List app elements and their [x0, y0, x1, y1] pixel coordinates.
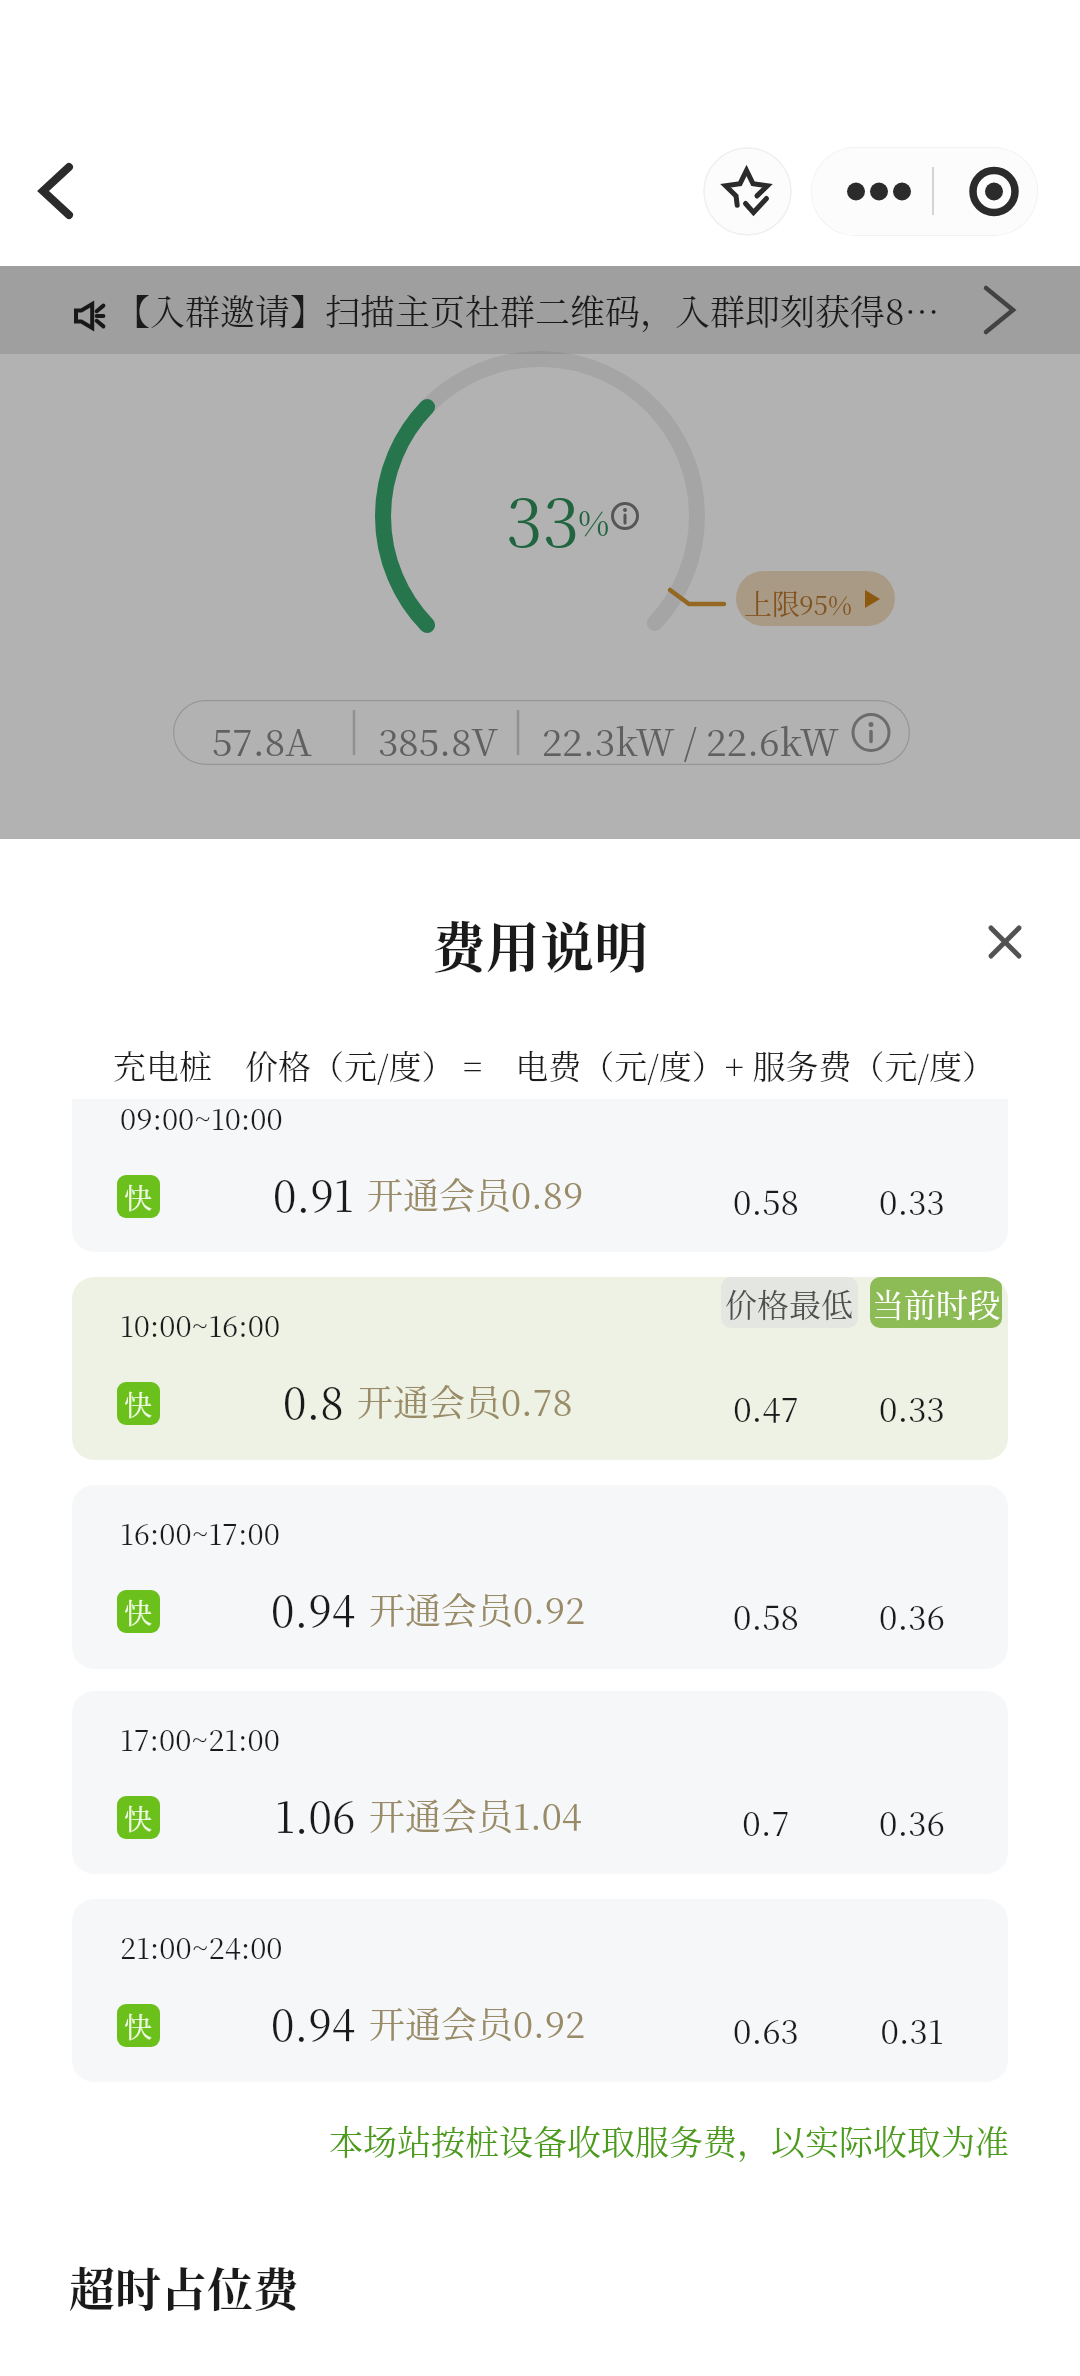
staticText: 费用说明: [0, 906, 1080, 984]
staticText: 开通会员0.89: [367, 1168, 584, 1220]
staticText: 开通会员0.92: [369, 1997, 586, 2049]
staticText: 上限: [744, 583, 801, 623]
staticText: 0.94: [271, 1579, 356, 1639]
button[interactable]: 上限: [736, 571, 895, 626]
staticText: 17:00~21:00: [120, 1718, 280, 1760]
button[interactable]: 16:00~17:00: [72, 1485, 1008, 1669]
button[interactable]: 09:00~10:00: [72, 1099, 1008, 1252]
staticText: 57.8A: [212, 713, 312, 765]
staticText: 开通会员1.04: [369, 1789, 582, 1841]
button[interactable]: Back: [16, 151, 96, 231]
staticText: 0.94: [271, 1993, 356, 2053]
staticText: 本场站按桩设备收取服务费，以实际收取为准: [0, 2116, 1009, 2165]
staticText: 09:00~10:00: [120, 1099, 283, 1139]
staticText: 22.3kW / 22.6kW: [542, 713, 839, 765]
button[interactable]: 【入群邀请】扫描主页社群二维码，入群即刻获得8…: [0, 266, 1080, 354]
staticText: 超时占位费: [69, 2253, 299, 2319]
staticText: 0.36: [842, 1592, 982, 1639]
staticText: 开通会员0.78: [357, 1375, 573, 1427]
button[interactable]: More options: [811, 147, 932, 236]
staticText: 【入群邀请】扫描主页社群二维码，入群即刻获得8…: [115, 285, 940, 335]
staticText: 快: [124, 1177, 153, 1217]
staticText: 0.58: [696, 1592, 836, 1639]
button[interactable]: 21:00~24:00: [72, 1899, 1008, 2082]
staticText: 16:00~17:00: [120, 1512, 280, 1554]
button[interactable]: 当前时段: [870, 1277, 1002, 1328]
staticText: 0.33: [842, 1177, 982, 1224]
staticText: 33: [506, 471, 580, 566]
button[interactable]: Battery details: [605, 496, 645, 536]
staticText: 0.7: [696, 1798, 836, 1845]
staticText: 0.33: [842, 1384, 982, 1431]
staticText: 385.8V: [378, 713, 498, 765]
button[interactable]: 17:00~21:00: [72, 1691, 1008, 1874]
staticText: 0.31: [842, 2006, 982, 2053]
button[interactable]: 57.8A: [173, 700, 910, 765]
button[interactable]: Close: [960, 897, 1050, 987]
staticText: 95%: [799, 585, 853, 622]
staticText: 0.47: [696, 1384, 836, 1431]
staticText: 0.36: [842, 1798, 982, 1845]
staticText: %: [578, 497, 610, 546]
staticText: 快: [124, 1384, 153, 1424]
button[interactable]: Favorite: [703, 147, 792, 236]
staticText: 10:00~16:00: [120, 1304, 281, 1346]
staticText: 快: [124, 1592, 153, 1632]
staticText: 1.06: [275, 1785, 356, 1845]
staticText: 0.91: [273, 1164, 354, 1224]
staticText: 0.58: [696, 1177, 836, 1224]
staticText: 开通会员0.92: [369, 1583, 586, 1635]
staticText: 21:00~24:00: [120, 1926, 283, 1968]
button[interactable]: 价格最低: [72, 1277, 1008, 1460]
staticText: 快: [124, 1798, 153, 1838]
button[interactable]: Close mini program: [934, 147, 1038, 236]
staticText: 0.8: [283, 1371, 344, 1431]
staticText: 充电桩 价格（元/度） = 电费（元/度）+ 服务费（元/度）: [113, 1041, 996, 1088]
staticText: 0.63: [696, 2006, 836, 2053]
staticText: 快: [124, 2006, 153, 2046]
staticText: 当前时段: [872, 1280, 1001, 1326]
staticText: 价格最低: [725, 1280, 854, 1326]
